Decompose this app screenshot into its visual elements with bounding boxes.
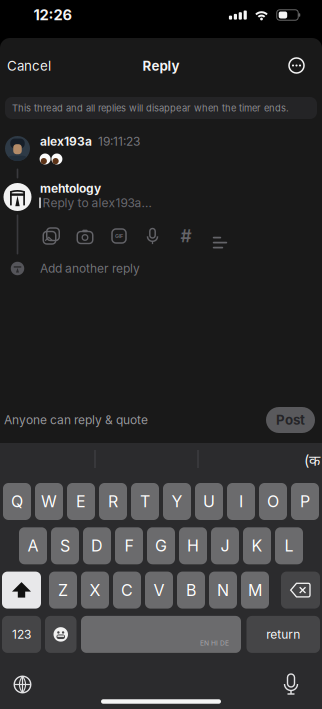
staticText: 123 — [12, 627, 31, 641]
staticText: EN HI DE — [200, 639, 229, 647]
button[interactable]: Z — [49, 572, 77, 609]
button[interactable]: O — [259, 483, 287, 520]
staticText: F — [124, 536, 133, 555]
staticText: K — [251, 536, 262, 555]
staticText: GIF — [115, 233, 123, 239]
staticText: U — [203, 492, 215, 511]
button[interactable]: Take photo — [76, 227, 93, 244]
staticText: R — [108, 492, 118, 511]
staticText: # — [180, 226, 191, 246]
button[interactable]: G — [147, 527, 175, 564]
staticText: alex193a — [40, 134, 92, 149]
button[interactable]: J — [211, 527, 239, 564]
staticText: M — [248, 581, 262, 600]
button[interactable]: Shift — [2, 572, 41, 609]
staticText: W — [41, 492, 57, 511]
staticText: L — [284, 536, 293, 555]
button[interactable]: H — [179, 527, 207, 564]
button[interactable]: 123 — [2, 616, 41, 653]
button[interactable]: Q — [3, 483, 31, 520]
button[interactable]: Delete — [281, 572, 320, 609]
staticText: Reply — [142, 58, 179, 74]
button[interactable]: K — [243, 527, 271, 564]
button[interactable]: Y — [163, 483, 191, 520]
button[interactable]: M — [241, 572, 269, 609]
staticText: N — [217, 581, 229, 600]
button[interactable]: C — [113, 572, 141, 609]
staticText: E — [76, 492, 86, 511]
staticText: 12:26 — [33, 6, 72, 24]
staticText: I — [239, 492, 243, 511]
button[interactable]: I — [227, 483, 255, 520]
button[interactable]: S — [51, 527, 79, 564]
button[interactable]: D — [83, 527, 111, 564]
button[interactable]: (क — [304, 450, 320, 470]
staticText: Anyone can reply & quote — [4, 413, 148, 427]
button[interactable]: Post — [266, 407, 315, 433]
button[interactable]: Space — [81, 616, 241, 653]
staticText: Q — [11, 492, 23, 511]
staticText: Z — [58, 581, 68, 600]
button[interactable]: return — [246, 616, 320, 653]
button[interactable]: V — [145, 572, 173, 609]
button[interactable]: R — [99, 483, 127, 520]
staticText: T — [140, 492, 150, 511]
button[interactable]: L — [275, 527, 303, 564]
button[interactable]: W — [35, 483, 63, 520]
staticText: P — [300, 492, 310, 511]
staticText: Add another reply — [40, 261, 140, 276]
button[interactable]: F — [115, 527, 143, 564]
button[interactable]: Next keyboard — [13, 675, 32, 694]
button[interactable]: Add topic — [178, 227, 194, 244]
staticText: Y — [171, 492, 182, 511]
staticText: J — [220, 536, 229, 555]
button[interactable]: T — [131, 483, 159, 520]
button[interactable]: Cancel — [7, 58, 51, 74]
button[interactable]: A — [19, 527, 47, 564]
button[interactable]: P — [291, 483, 319, 520]
button[interactable]: U — [195, 483, 223, 520]
staticText: O — [267, 492, 279, 511]
button[interactable]: Add GIF — [111, 227, 127, 244]
staticText: S — [60, 536, 70, 555]
button[interactable]: Attach photo — [42, 227, 60, 244]
button[interactable]: Emoji — [45, 616, 76, 653]
staticText: Post — [276, 412, 305, 428]
staticText: Cancel — [7, 58, 51, 74]
button[interactable]: Add poll — [212, 228, 227, 243]
staticText: D — [91, 536, 103, 555]
button[interactable]: X — [81, 572, 109, 609]
staticText: Reply to alex193a… — [42, 196, 151, 210]
button[interactable]: Anyone can reply & quote — [4, 413, 148, 427]
button[interactable]: Add another reply — [40, 261, 140, 276]
staticText: G — [155, 536, 167, 555]
staticText: V — [153, 581, 164, 600]
staticText: mehtology — [40, 181, 101, 196]
button[interactable]: Dictation — [282, 673, 299, 695]
staticText: B — [186, 581, 196, 600]
staticText: H — [187, 536, 199, 555]
button[interactable]: B — [177, 572, 205, 609]
button[interactable]: Record voice — [144, 227, 160, 244]
staticText: return — [266, 627, 300, 641]
staticText: This thread and all replies will disappe… — [12, 102, 289, 113]
button[interactable]: E — [67, 483, 95, 520]
staticText: A — [27, 536, 38, 555]
staticText: X — [89, 581, 100, 600]
staticText: C — [121, 581, 133, 600]
button[interactable]: More options — [288, 57, 305, 74]
button[interactable]: N — [209, 572, 237, 609]
staticText: 19:11:23 — [92, 134, 140, 149]
staticText: (क — [304, 450, 320, 470]
